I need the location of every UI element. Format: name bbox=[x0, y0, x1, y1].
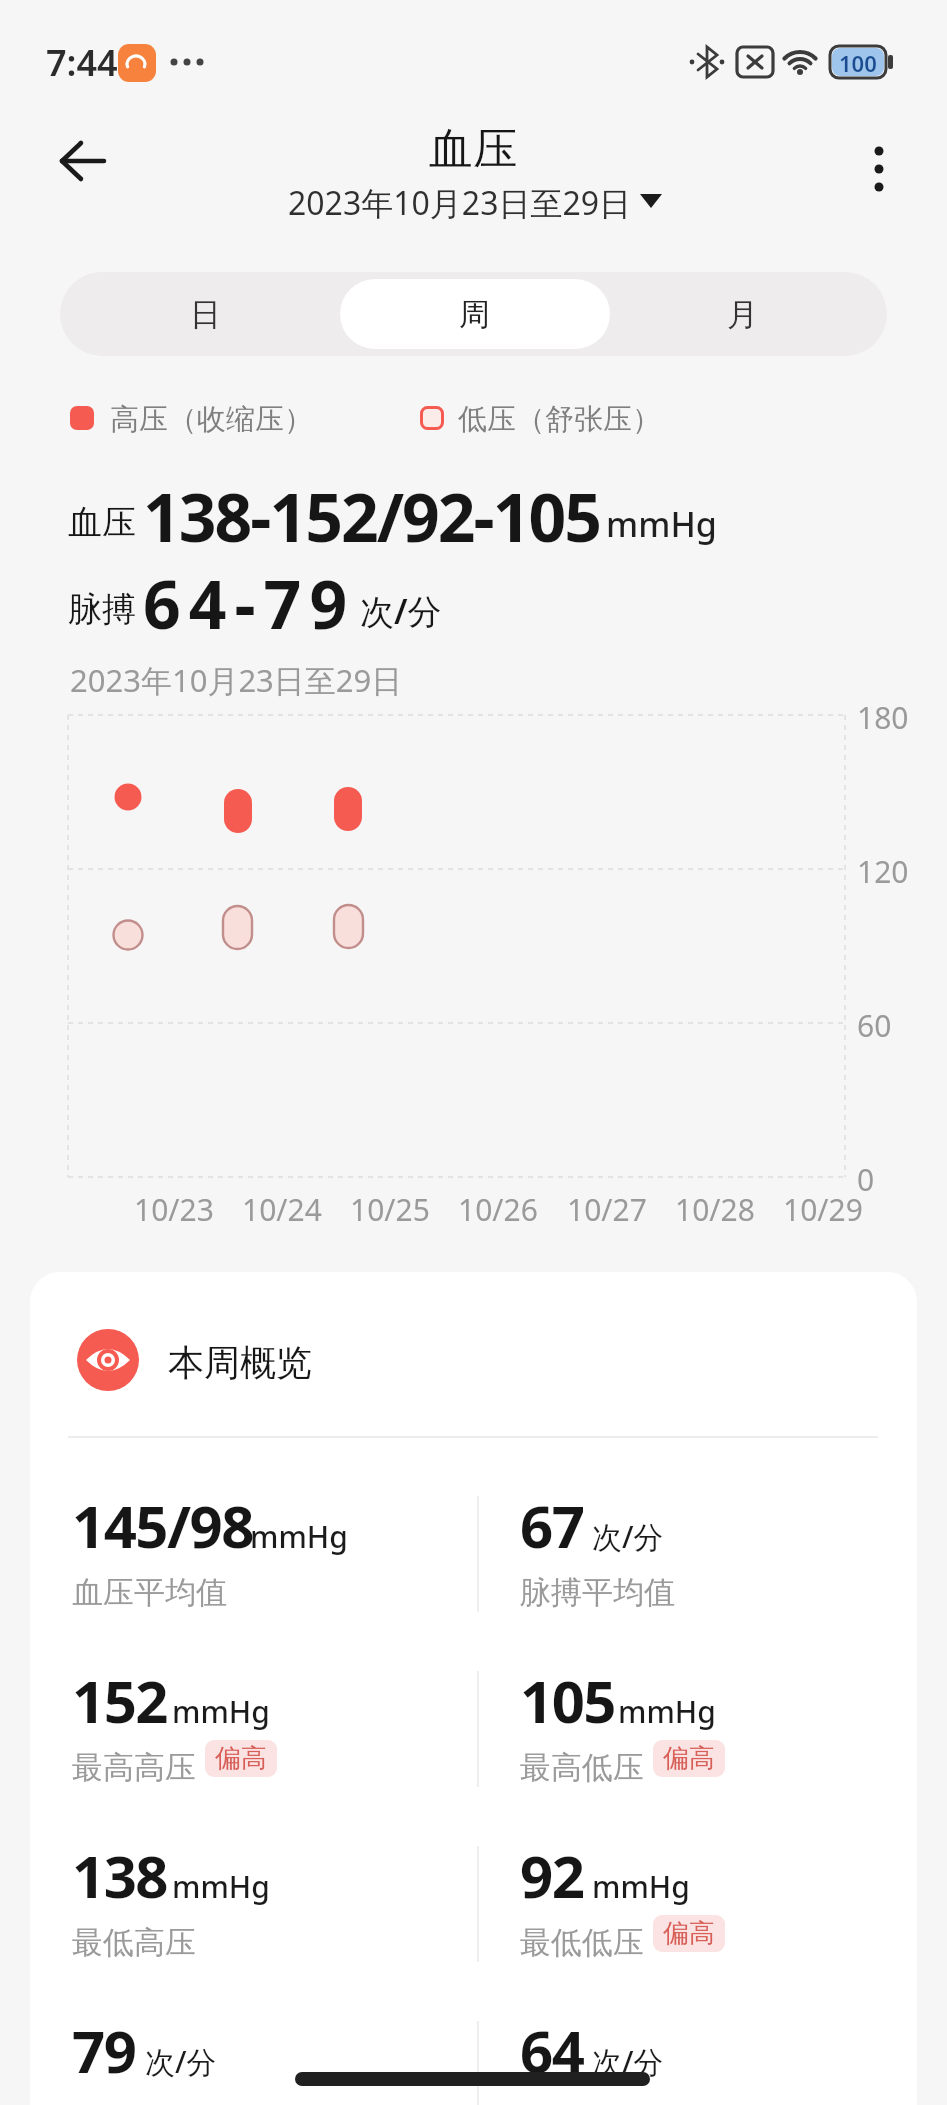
staticText: 偏高 bbox=[663, 1742, 715, 1775]
staticText: mmHg bbox=[618, 1691, 716, 1732]
staticText: 脉搏平均值 bbox=[520, 1573, 675, 1612]
staticText: 138-152/92-105 bbox=[143, 471, 600, 561]
staticText: 偏高 bbox=[663, 1917, 715, 1950]
staticText: 日 bbox=[190, 295, 221, 334]
staticText: 低压（舒张压） bbox=[458, 401, 661, 438]
staticText: 64-79 bbox=[143, 558, 356, 648]
staticText: 152 bbox=[72, 1661, 168, 1740]
staticText: 10/28 bbox=[675, 1189, 755, 1225]
staticText: 145/98 bbox=[72, 1486, 253, 1565]
staticText: 67 bbox=[520, 1486, 584, 1565]
staticText: 92 bbox=[520, 1836, 584, 1915]
staticText: 最高低压 bbox=[520, 1748, 644, 1787]
staticText: 79 bbox=[72, 2011, 136, 2090]
staticText: 2023年10月23日至29日 bbox=[70, 659, 403, 701]
staticText: mmHg bbox=[606, 501, 717, 547]
staticText: 本周概览 bbox=[168, 1340, 312, 1385]
staticText: 周 bbox=[459, 295, 490, 334]
staticText: 138 bbox=[72, 1836, 168, 1915]
staticText: 2023年10月23日至29日 bbox=[288, 181, 632, 221]
staticText: mmHg bbox=[250, 1516, 348, 1557]
staticText: 10/25 bbox=[350, 1189, 430, 1225]
staticText: 10/26 bbox=[458, 1189, 538, 1225]
staticText: 120 bbox=[857, 851, 909, 892]
staticText: 次/分 bbox=[592, 1516, 664, 1557]
staticText: 10/23 bbox=[134, 1189, 214, 1225]
staticText: 64 bbox=[520, 2011, 584, 2090]
staticText: 偏高 bbox=[215, 1742, 267, 1775]
staticText: 次/分 bbox=[592, 2041, 664, 2082]
staticText: mmHg bbox=[172, 1866, 270, 1907]
staticText: 100 bbox=[839, 48, 877, 76]
staticText: 105 bbox=[520, 1661, 616, 1740]
staticText: 最低高压 bbox=[72, 1923, 196, 1962]
staticText: mmHg bbox=[592, 1866, 690, 1907]
staticText: 180 bbox=[857, 697, 909, 738]
staticText: 最低低压 bbox=[520, 1923, 644, 1962]
staticText: 月 bbox=[727, 295, 758, 334]
staticText: 脉搏 bbox=[68, 588, 136, 631]
staticText: 血压平均值 bbox=[72, 1573, 227, 1612]
staticText: 最高高压 bbox=[72, 1748, 196, 1787]
staticText: 次/分 bbox=[145, 2041, 217, 2082]
staticText: 7:44 bbox=[46, 38, 118, 87]
staticText: mmHg bbox=[172, 1691, 270, 1732]
staticText: 10/29 bbox=[783, 1189, 863, 1225]
staticText: 血压 bbox=[429, 122, 517, 172]
staticText: 10/24 bbox=[242, 1189, 322, 1225]
staticText: 0 bbox=[857, 1159, 875, 1200]
staticText: 60 bbox=[857, 1005, 892, 1046]
staticText: 次/分 bbox=[360, 588, 442, 634]
staticText: 高压（收缩压） bbox=[110, 401, 313, 438]
staticText: 血压 bbox=[68, 501, 136, 544]
staticText: 10/27 bbox=[567, 1189, 647, 1225]
